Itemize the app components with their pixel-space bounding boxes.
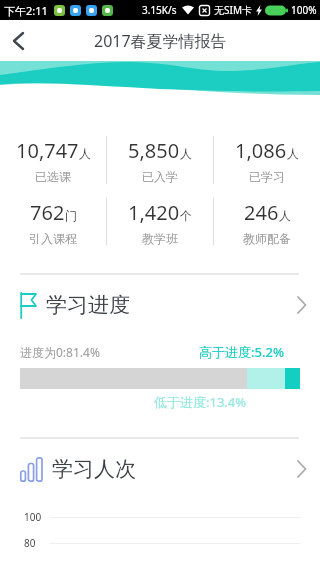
staticText: 已学习 bbox=[249, 169, 285, 184]
staticText: 80 bbox=[24, 536, 36, 550]
staticText: 5,850 bbox=[128, 137, 180, 164]
staticText: 人 bbox=[79, 146, 91, 161]
staticText: 已入学 bbox=[142, 169, 178, 184]
staticText: 教师配备 bbox=[243, 231, 291, 246]
staticText: 3.15K/s bbox=[142, 3, 177, 17]
staticText: 引入课程 bbox=[29, 231, 77, 246]
staticText: 个 bbox=[180, 208, 192, 223]
staticText: 1,420 bbox=[128, 199, 180, 226]
button[interactable]: 学习人次 bbox=[0, 439, 320, 499]
staticText: 100% bbox=[291, 3, 317, 17]
staticText: 人 bbox=[287, 146, 299, 161]
staticText: 246 bbox=[244, 199, 279, 226]
staticText: 学习进度 bbox=[46, 292, 130, 318]
staticText: 10,747 bbox=[16, 137, 79, 164]
staticText: 教学班 bbox=[142, 231, 178, 246]
staticText: 762 bbox=[30, 199, 65, 226]
staticText: 低于进度:13.4% bbox=[154, 393, 247, 411]
button[interactable]: 学习进度 bbox=[0, 275, 320, 335]
staticText: 100 bbox=[24, 510, 42, 524]
button[interactable] bbox=[0, 20, 36, 61]
staticText: 下午2:11 bbox=[4, 3, 48, 18]
staticText: 1,086 bbox=[235, 137, 287, 164]
staticText: 门 bbox=[65, 208, 77, 223]
staticText: 无SIM卡 bbox=[214, 3, 252, 17]
staticText: 学习人次 bbox=[52, 456, 136, 482]
staticText: 高于进度:5.2% bbox=[199, 343, 285, 361]
staticText: 人 bbox=[279, 208, 291, 223]
staticText: 人 bbox=[180, 146, 192, 161]
staticText: 已选课 bbox=[35, 169, 71, 184]
staticText: 2017春夏学情报告 bbox=[94, 30, 227, 52]
staticText: 进度为0:81.4% bbox=[20, 344, 100, 360]
